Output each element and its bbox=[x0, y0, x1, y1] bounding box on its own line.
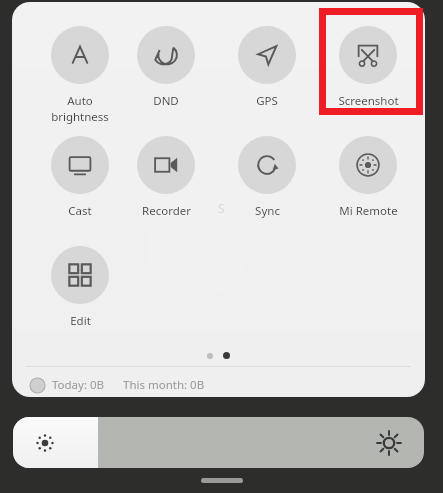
staticText: GPS bbox=[256, 93, 278, 109]
other: High brightness bbox=[376, 430, 402, 456]
staticText: Cast bbox=[68, 203, 92, 219]
button[interactable]: Sync bbox=[230, 132, 304, 219]
button[interactable]: Auto brightness bbox=[43, 22, 117, 125]
button[interactable]: Low brightness bbox=[13, 417, 424, 468]
staticText: Screenshot bbox=[338, 93, 399, 109]
staticText: Sync bbox=[255, 203, 280, 219]
staticText: This month: 0B bbox=[123, 377, 205, 393]
staticText: Edit bbox=[70, 313, 91, 329]
staticText: DND bbox=[153, 93, 179, 109]
button[interactable]: Cast bbox=[43, 132, 117, 219]
button[interactable]: DND bbox=[129, 22, 203, 109]
other: Data usage info bbox=[30, 378, 45, 393]
other: Low brightness bbox=[34, 432, 56, 454]
button[interactable]: Screenshot bbox=[331, 22, 405, 109]
button[interactable]: GPS bbox=[230, 22, 304, 109]
button[interactable]: Edit bbox=[43, 242, 117, 329]
staticText: Auto brightness bbox=[43, 93, 117, 125]
staticText: S bbox=[218, 200, 225, 216]
staticText: Today: 0B bbox=[52, 377, 105, 393]
button[interactable]: Data usage info bbox=[30, 374, 205, 396]
staticText: Recorder bbox=[142, 203, 191, 219]
button[interactable]: Recorder bbox=[129, 132, 203, 219]
staticText: Mi Remote bbox=[339, 203, 398, 219]
button[interactable]: Mi Remote bbox=[331, 132, 405, 219]
